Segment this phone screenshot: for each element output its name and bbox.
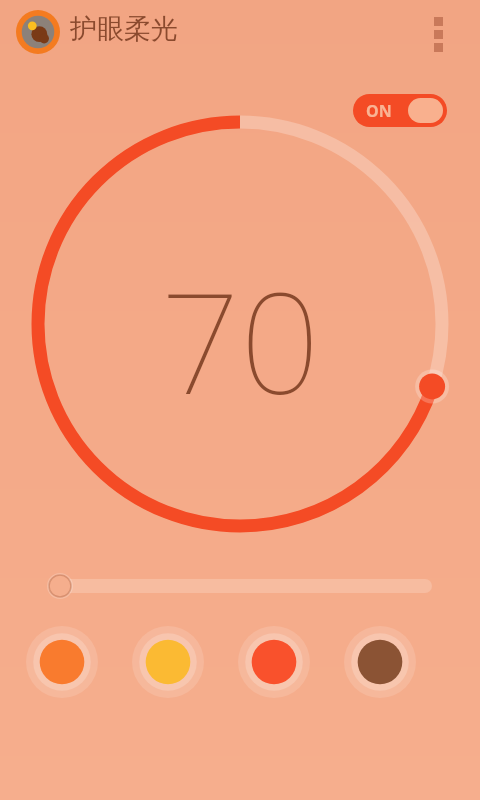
- button[interactable]: Colour preset 4: [344, 626, 416, 698]
- button[interactable]: Colour preset 3: [238, 626, 310, 698]
- button[interactable]: Brightness dial, 70: [0, 0, 480, 800]
- staticText: 护眼柔光: [70, 12, 178, 46]
- staticText: 70: [0, 244, 480, 404]
- button[interactable]: App icon: [16, 10, 60, 54]
- button[interactable]: More options: [420, 8, 460, 56]
- button[interactable]: Power toggle, ON: [353, 94, 447, 127]
- button[interactable]: Colour preset 1: [26, 626, 98, 698]
- button[interactable]: Colour preset 2: [132, 626, 204, 698]
- staticText: ON: [366, 100, 392, 122]
- button[interactable]: Warmth slider: [40, 568, 440, 604]
